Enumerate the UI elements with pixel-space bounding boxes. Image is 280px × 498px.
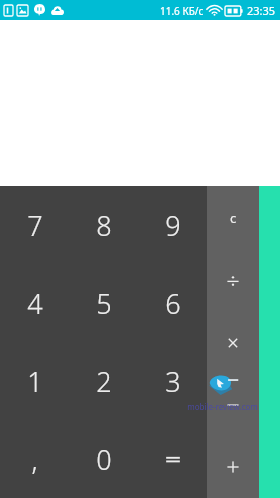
button[interactable]: Plus — [207, 436, 259, 498]
staticText: 23:35 — [247, 3, 276, 18]
button[interactable]: Multiply — [207, 312, 259, 374]
button[interactable]: Minus — [207, 374, 259, 436]
staticText: 7 — [27, 207, 43, 244]
button[interactable]: 8 — [69, 186, 138, 264]
button[interactable]: Divide — [207, 249, 259, 312]
staticText: 8 — [96, 207, 112, 244]
staticText: 2 — [96, 363, 112, 400]
staticText: 0 — [96, 441, 112, 478]
button[interactable]: 0 — [69, 420, 138, 498]
staticText: 4 — [27, 285, 43, 322]
button[interactable]: 7 — [0, 186, 69, 264]
staticText: mobile-review.com — [187, 401, 258, 412]
button[interactable]: c — [207, 186, 259, 249]
button[interactable]: Equals — [138, 420, 207, 498]
button[interactable]: 2 — [69, 342, 138, 420]
staticText: 1 — [27, 363, 43, 400]
staticText: 11.6 КБ/c — [160, 4, 204, 18]
staticText: 6 — [165, 285, 181, 322]
staticText: 3 — [165, 363, 181, 400]
button[interactable]: 4 — [0, 264, 69, 342]
button[interactable]: 1 — [0, 342, 69, 420]
staticText: , — [31, 441, 38, 478]
button[interactable]: 6 — [138, 264, 207, 342]
button[interactable]: , — [0, 420, 69, 498]
button[interactable]: 5 — [69, 264, 138, 342]
button[interactable]: 9 — [138, 186, 207, 264]
staticText: c — [230, 209, 237, 227]
button[interactable]: 3 — [138, 342, 207, 420]
staticText: 9 — [165, 207, 181, 244]
staticText: 5 — [96, 285, 112, 322]
